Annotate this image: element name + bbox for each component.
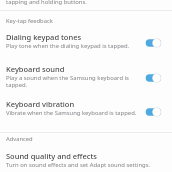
staticText: Sound quality and effects bbox=[6, 151, 97, 161]
button[interactable]: Keyboard vibration bbox=[0, 99, 172, 123]
staticText: Keyboard vibration bbox=[6, 99, 75, 109]
button[interactable]: Dialing keypad tones bbox=[0, 32, 172, 57]
staticText: Play a sound when the Samsung keyboard i… bbox=[6, 74, 130, 89]
staticText: Dialing keypad tones bbox=[6, 32, 82, 42]
button[interactable]: Keyboard sound bbox=[0, 64, 172, 92]
staticText: tapping and holding buttons. bbox=[6, 0, 87, 6]
staticText: Keyboard sound bbox=[6, 64, 65, 74]
staticText: Play tone when the dialing keypad is tap… bbox=[6, 42, 130, 50]
staticText: Turn on sound effects and set Adapt soun… bbox=[6, 161, 151, 169]
button[interactable]: Toggle setting bbox=[138, 34, 168, 52]
staticText: Vibrate when the Samsung keyboard is tap… bbox=[6, 109, 137, 117]
button[interactable]: Sound quality and effects bbox=[0, 151, 172, 172]
staticText: Advanced bbox=[6, 135, 33, 143]
staticText: Key-tap feedback bbox=[6, 17, 53, 25]
button[interactable]: Toggle setting bbox=[138, 69, 168, 87]
button[interactable]: Toggle setting bbox=[138, 103, 168, 121]
